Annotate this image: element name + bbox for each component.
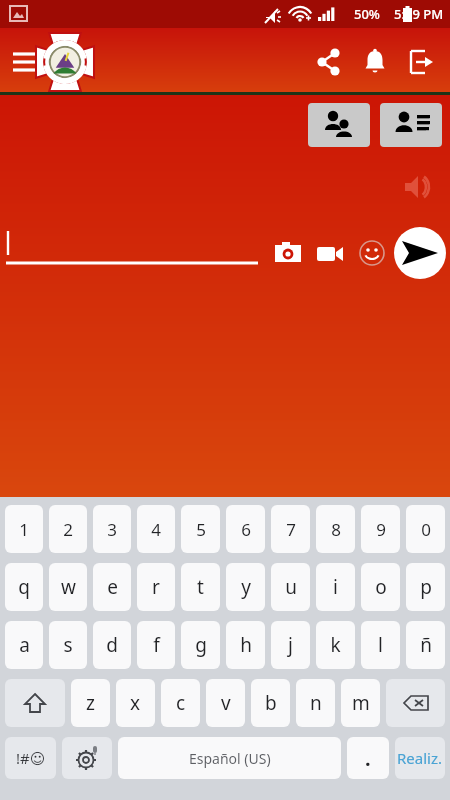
staticText: 3	[107, 518, 117, 541]
staticText: Español (US)	[189, 749, 271, 768]
button[interactable]: a	[5, 621, 43, 669]
button[interactable]: 9	[361, 505, 400, 553]
button[interactable]: Symbols	[5, 737, 56, 779]
button[interactable]: Notifications	[352, 39, 398, 85]
staticText: z	[86, 690, 95, 716]
staticText: b	[265, 690, 277, 716]
staticText: x	[130, 690, 141, 716]
button[interactable]: 6	[226, 505, 265, 553]
button[interactable]: q	[5, 563, 43, 611]
button[interactable]: 0	[406, 505, 445, 553]
button[interactable]: p	[406, 563, 445, 611]
staticText: 1	[19, 518, 29, 541]
button[interactable]: w	[49, 563, 87, 611]
staticText: 2	[63, 518, 73, 541]
button[interactable]: y	[226, 563, 265, 611]
staticText: 8	[331, 518, 341, 541]
staticText: f	[153, 632, 160, 658]
staticText: m	[352, 690, 370, 716]
staticText: o	[375, 574, 387, 600]
button[interactable]: Realiz.	[395, 737, 445, 779]
button[interactable]: n	[296, 679, 335, 727]
button[interactable]: Contact details	[380, 103, 442, 147]
staticText: v	[221, 690, 231, 716]
button[interactable]: 3	[93, 505, 131, 553]
button[interactable]: u	[271, 563, 310, 611]
button[interactable]: i	[316, 563, 355, 611]
staticText: w	[61, 574, 76, 600]
button[interactable]: 8	[316, 505, 355, 553]
button[interactable]: m	[341, 679, 380, 727]
button[interactable]: Menu	[4, 42, 44, 82]
button[interactable]: z	[71, 679, 110, 727]
button[interactable]: l	[361, 621, 400, 669]
staticText: 9	[376, 518, 386, 541]
staticText: c	[176, 690, 186, 716]
button[interactable]: ñ	[406, 621, 445, 669]
staticText: n	[310, 690, 322, 716]
button[interactable]: e	[93, 563, 131, 611]
staticText: r	[152, 574, 160, 600]
button[interactable]: h	[226, 621, 265, 669]
button[interactable]: Share	[306, 39, 352, 85]
staticText: .	[365, 745, 371, 772]
button[interactable]: g	[181, 621, 220, 669]
staticText: a	[19, 632, 30, 658]
button[interactable]: Video	[310, 233, 350, 273]
staticText: Realiz.	[397, 748, 443, 768]
button[interactable]: Backspace	[386, 679, 445, 727]
staticText: e	[107, 574, 118, 600]
staticText: q	[18, 574, 30, 600]
button[interactable]: b	[251, 679, 290, 727]
button[interactable]: Log out	[398, 39, 444, 85]
staticText: t	[197, 574, 204, 600]
button[interactable]: r	[137, 563, 175, 611]
button[interactable]: Send	[394, 227, 446, 279]
button[interactable]: f	[137, 621, 175, 669]
staticText: p	[420, 574, 432, 600]
button[interactable]: s	[49, 621, 87, 669]
button[interactable]: 5	[181, 505, 220, 553]
button[interactable]: Contacts	[308, 103, 370, 147]
button[interactable]: o	[361, 563, 400, 611]
staticText: g	[195, 632, 207, 658]
button[interactable]: c	[161, 679, 200, 727]
staticText: 0	[421, 518, 431, 541]
button[interactable]: Shift	[5, 679, 65, 727]
button[interactable]: Emoji	[352, 233, 392, 273]
staticText: 5	[196, 518, 206, 541]
button[interactable]: Camera	[268, 233, 308, 273]
staticText: u	[285, 574, 297, 600]
button[interactable]: Settings	[62, 737, 112, 779]
staticText: !#☺	[16, 748, 46, 768]
button[interactable]: x	[116, 679, 155, 727]
button[interactable]: t	[181, 563, 220, 611]
button[interactable]: Español (US)	[118, 737, 341, 779]
button[interactable]: 2	[49, 505, 87, 553]
button[interactable]: v	[206, 679, 245, 727]
staticText: k	[330, 632, 341, 658]
staticText: d	[106, 632, 118, 658]
button[interactable]: 4	[137, 505, 175, 553]
button[interactable]: j	[271, 621, 310, 669]
staticText: 5:29 PM	[394, 5, 444, 23]
staticText: ñ	[420, 632, 432, 658]
button[interactable]: 1	[5, 505, 43, 553]
staticText: 7	[286, 518, 296, 541]
button[interactable]: 7	[271, 505, 310, 553]
staticText: y	[241, 574, 251, 600]
staticText: s	[63, 632, 73, 658]
staticText: 50%	[354, 5, 380, 23]
staticText: 4	[151, 518, 161, 541]
button[interactable]: Speaker	[400, 169, 436, 205]
staticText: 6	[241, 518, 251, 541]
button[interactable]: Period	[347, 737, 389, 779]
staticText: i	[333, 574, 338, 600]
button[interactable]: k	[316, 621, 355, 669]
staticText: l	[378, 632, 383, 658]
button[interactable]: d	[93, 621, 131, 669]
staticText: h	[240, 632, 252, 658]
staticText: j	[288, 632, 293, 658]
